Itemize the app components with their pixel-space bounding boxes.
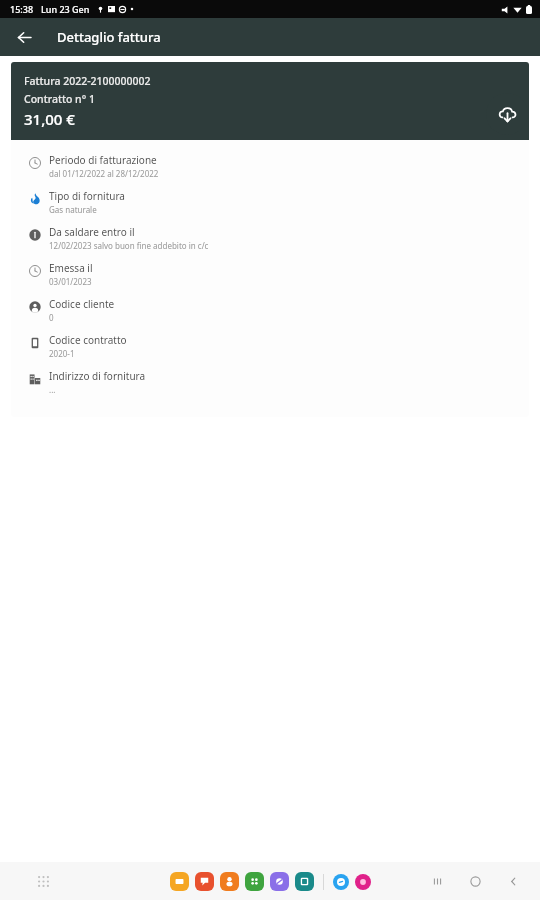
button[interactable]: App 5 — [295, 872, 314, 891]
button[interactable]: App recente 2 — [355, 874, 371, 890]
button[interactable]: Indietro — [6, 19, 42, 55]
button[interactable]: App 0 — [170, 872, 189, 891]
staticText: Indirizzo di fornitura — [49, 369, 146, 383]
button[interactable]: Home — [462, 868, 488, 894]
staticText: Emessa il — [49, 261, 93, 275]
staticText: Contratto n° 1 — [24, 92, 95, 106]
button[interactable]: Emessa il — [11, 257, 529, 293]
button[interactable]: Indietro — [500, 868, 526, 894]
button[interactable]: Scarica fattura — [486, 93, 528, 135]
button[interactable]: Recenti — [424, 868, 450, 894]
button[interactable]: App — [30, 868, 56, 894]
button[interactable]: App 2 — [220, 872, 239, 891]
staticText: 31,00 € — [24, 109, 75, 129]
button[interactable]: App 1 — [195, 872, 214, 891]
staticText: 12/02/2023 salvo buon fine addebito in c… — [49, 240, 209, 251]
staticText: Periodo di fatturazione — [49, 153, 157, 167]
button[interactable]: Codice cliente — [11, 293, 529, 329]
staticText: Tipo di fornitura — [49, 189, 125, 203]
staticText: 15:38 — [10, 3, 34, 15]
button[interactable]: Da saldare entro il — [11, 221, 529, 257]
button[interactable]: App recente 1 — [333, 874, 349, 890]
staticText: Gas naturale — [49, 204, 97, 215]
staticText: 03/01/2023 — [49, 276, 92, 287]
staticText: Codice cliente — [49, 297, 115, 311]
staticText: Fattura 2022-2100000002 — [24, 74, 151, 88]
button[interactable]: Tipo di fornitura — [11, 185, 529, 221]
staticText: ... — [49, 384, 56, 395]
staticText: 0 — [49, 312, 54, 323]
staticText: Dettaglio fattura — [57, 28, 161, 46]
button[interactable]: Indirizzo di fornitura — [11, 365, 529, 401]
button[interactable]: App 3 — [245, 872, 264, 891]
staticText: 2020-1 — [49, 348, 75, 359]
staticText: Da saldare entro il — [49, 225, 135, 239]
staticText: Codice contratto — [49, 333, 127, 347]
button[interactable]: App 4 — [270, 872, 289, 891]
staticText: dal 01/12/2022 al 28/12/2022 — [49, 168, 159, 179]
button[interactable]: Periodo di fatturazione — [11, 149, 529, 185]
staticText: Lun 23 Gen — [41, 3, 90, 15]
button[interactable]: Codice contratto — [11, 329, 529, 365]
